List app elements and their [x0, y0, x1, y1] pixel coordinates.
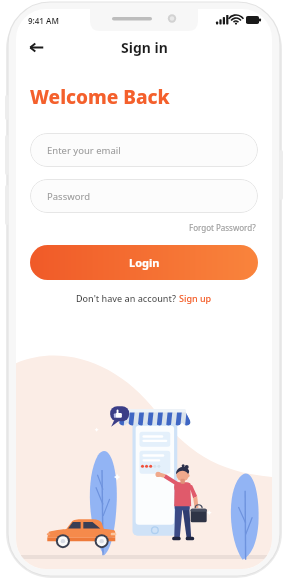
button[interactable]: Back — [22, 33, 50, 61]
button[interactable]: Password — [30, 179, 258, 213]
staticText: Enter your email — [47, 144, 121, 157]
button[interactable]: Forgot Password? — [187, 221, 258, 234]
staticText: Sign up — [179, 292, 212, 304]
button[interactable]: Enter your email — [30, 133, 258, 167]
staticText: Don't have an account? — [76, 292, 179, 304]
button[interactable]: Sign up — [179, 292, 212, 304]
staticText: Sign in — [121, 38, 168, 57]
staticText: Forgot Password? — [189, 222, 256, 233]
staticText: Password — [47, 190, 90, 203]
staticText: 9:41 AM — [28, 15, 59, 26]
staticText: Login — [129, 255, 160, 270]
staticText: Welcome Back — [30, 84, 170, 110]
button[interactable]: Login — [30, 245, 258, 280]
